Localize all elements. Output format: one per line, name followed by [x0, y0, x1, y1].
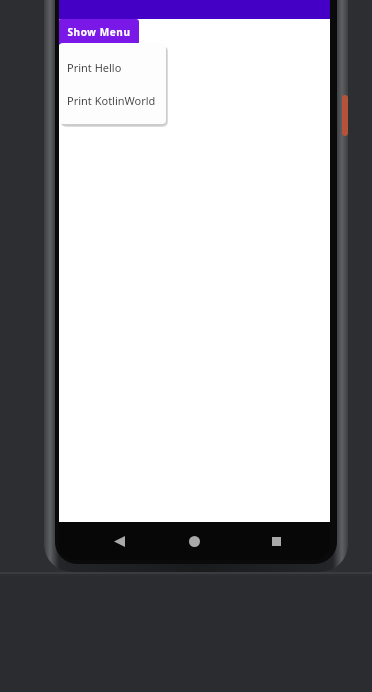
staticText: Show Menu [67, 25, 131, 39]
button[interactable]: Home [182, 529, 206, 553]
button[interactable]: Back [107, 529, 131, 553]
button[interactable]: Show Menu [59, 19, 139, 45]
staticText: Print KotlinWorld [67, 93, 156, 108]
button[interactable]: Recent apps [264, 529, 288, 553]
button[interactable]: Print KotlinWorld [59, 84, 166, 117]
staticText: Print Hello [67, 60, 122, 75]
button[interactable]: Print Hello [59, 51, 166, 84]
